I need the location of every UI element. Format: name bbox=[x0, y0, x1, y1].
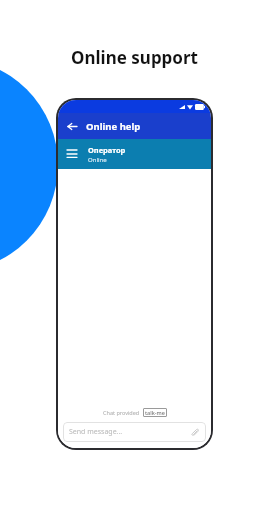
staticText: Send message... bbox=[69, 427, 189, 437]
staticText: Chat provided bbox=[103, 409, 140, 416]
button[interactable]: talk-me bbox=[143, 408, 167, 417]
button[interactable]: Back bbox=[65, 119, 79, 133]
other: Attach file bbox=[189, 427, 200, 438]
button[interactable]: Send message... bbox=[63, 422, 206, 442]
staticText: Online bbox=[88, 156, 107, 164]
staticText: Online help bbox=[86, 120, 141, 133]
staticText: Online support bbox=[71, 46, 198, 69]
other: Menu bbox=[65, 147, 79, 161]
button[interactable]: Menu bbox=[58, 139, 211, 169]
staticText: Оператор bbox=[88, 145, 126, 155]
staticText: talk-me bbox=[145, 409, 165, 416]
